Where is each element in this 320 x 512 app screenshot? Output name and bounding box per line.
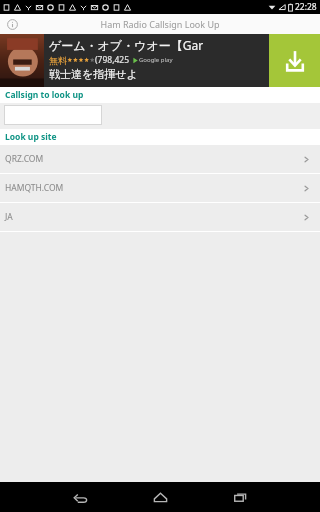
staticText: Callsign to look up (5, 89, 84, 101)
button[interactable]: QRZ.COM (0, 145, 320, 173)
staticText: Google play (139, 56, 173, 64)
button[interactable]: HAMQTH.COM (0, 174, 320, 202)
button[interactable]: Home (120, 482, 200, 512)
button[interactable]: Info (4, 16, 20, 32)
button[interactable]: Back (40, 482, 120, 512)
staticText: 無料 (49, 55, 67, 66)
staticText: (798,425 (95, 54, 130, 66)
staticText: 22:28 (295, 1, 317, 13)
staticText: Ham Radio Callsign Look Up (100, 18, 220, 30)
staticText: HAMQTH.COM (5, 182, 64, 194)
button[interactable]: ゲーム・オブ・ウオー【Gar (0, 34, 320, 87)
staticText: Look up site (5, 131, 57, 143)
button[interactable]: Recent apps (200, 482, 280, 512)
button[interactable]: Install (269, 34, 320, 87)
button[interactable]: Callsign input (4, 105, 102, 125)
staticText: JA (5, 211, 13, 223)
button[interactable]: JA (0, 203, 320, 231)
staticText: QRZ.COM (5, 153, 44, 165)
staticText: ゲーム・オブ・ウオー【Gar (49, 37, 204, 53)
staticText: 戦士達を指揮せよ (49, 67, 138, 81)
